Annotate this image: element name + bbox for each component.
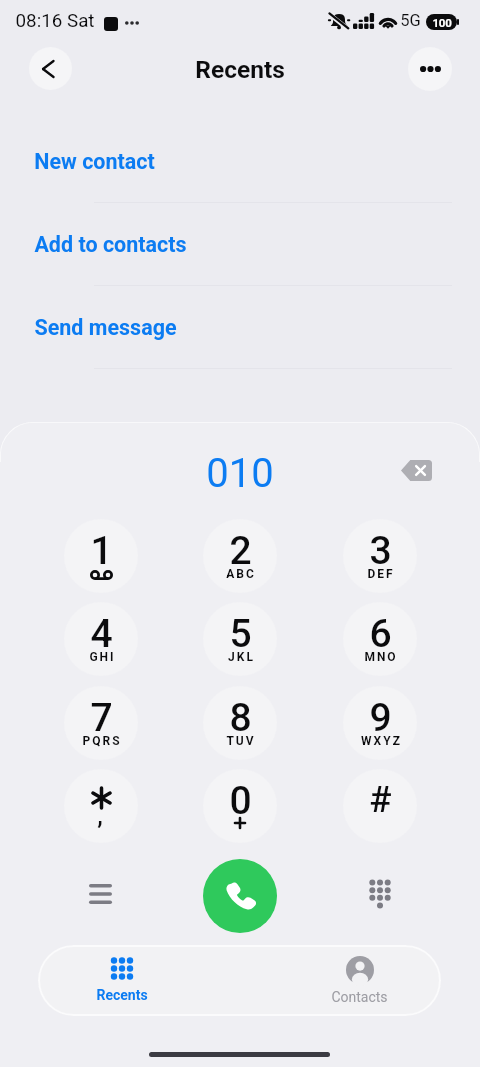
staticText: , bbox=[97, 801, 103, 830]
button[interactable]: 0 bbox=[203, 769, 277, 843]
button[interactable]: # bbox=[343, 769, 417, 843]
button[interactable]: Contacts bbox=[275, 945, 441, 1016]
staticText: GHI bbox=[89, 650, 116, 664]
staticText: 1 bbox=[90, 528, 113, 574]
button[interactable]: 6 bbox=[343, 602, 417, 676]
staticText: TUV bbox=[226, 734, 256, 748]
button[interactable]: Call bbox=[203, 859, 277, 933]
staticText: WXYZ bbox=[361, 734, 402, 748]
staticText: New contact bbox=[34, 149, 155, 174]
button[interactable]: 8 bbox=[203, 686, 277, 760]
button[interactable]: 3 bbox=[343, 519, 417, 593]
staticText: Recents bbox=[195, 55, 285, 84]
staticText: DEF bbox=[367, 567, 395, 581]
staticText: 6 bbox=[369, 611, 392, 657]
button[interactable]: , bbox=[64, 769, 138, 843]
button[interactable]: Backspace bbox=[394, 448, 438, 492]
button[interactable]: 5 bbox=[203, 602, 277, 676]
staticText: MNO bbox=[364, 650, 398, 664]
staticText: Recents bbox=[96, 987, 148, 1003]
button[interactable]: Keypad bbox=[356, 870, 404, 918]
button[interactable]: Add to contacts bbox=[0, 203, 480, 286]
button[interactable]: Send message bbox=[0, 286, 480, 369]
staticText: PQRS bbox=[82, 734, 122, 748]
button[interactable]: 9 bbox=[343, 686, 417, 760]
staticText: 4 bbox=[90, 611, 113, 657]
button[interactable]: More options bbox=[408, 47, 452, 91]
staticText: Contacts bbox=[331, 989, 388, 1005]
staticText: 7 bbox=[90, 695, 113, 741]
button[interactable]: Call log list bbox=[76, 870, 124, 918]
button[interactable]: Recents bbox=[38, 945, 206, 1016]
staticText: # bbox=[369, 778, 392, 821]
staticText: 8 bbox=[229, 695, 252, 741]
staticText: 3 bbox=[369, 528, 392, 574]
staticText: 010 bbox=[206, 450, 274, 497]
staticText: 08:16 Sat bbox=[15, 10, 95, 32]
staticText: 9 bbox=[369, 695, 392, 741]
staticText: 2 bbox=[229, 528, 252, 574]
staticText: 100 bbox=[432, 16, 452, 29]
button[interactable]: Back bbox=[29, 47, 72, 90]
button[interactable]: New contact bbox=[0, 120, 480, 203]
button[interactable]: 4 bbox=[64, 602, 138, 676]
button[interactable]: 1 bbox=[64, 519, 138, 593]
staticText: 5 bbox=[229, 611, 252, 657]
button[interactable]: 2 bbox=[203, 519, 277, 593]
staticText: Add to contacts bbox=[34, 232, 187, 257]
staticText: Send message bbox=[34, 315, 177, 340]
staticText: ABC bbox=[226, 567, 256, 581]
staticText: 0 bbox=[229, 778, 252, 824]
staticText: JKL bbox=[228, 650, 255, 664]
staticText: 5G bbox=[400, 11, 421, 30]
button[interactable]: 7 bbox=[64, 686, 138, 760]
